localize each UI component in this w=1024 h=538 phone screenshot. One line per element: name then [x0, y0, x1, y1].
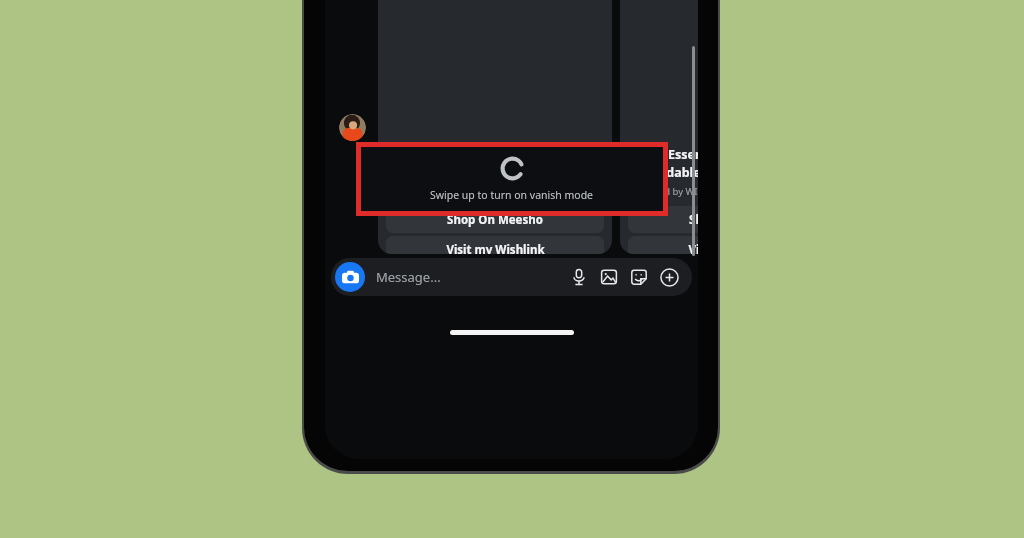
staticText: Swipe up to turn on vanish mode [430, 188, 594, 202]
button[interactable]: More options [654, 262, 684, 292]
staticText: Visit my Wishlink [688, 242, 698, 254]
staticText: Extendable Mop [631, 164, 698, 181]
staticText: HomeEssentials [631, 146, 698, 163]
button[interactable]: Swipe up to turn on vanish mode [356, 142, 668, 216]
button[interactable]: Stickers [624, 262, 654, 292]
button[interactable]: Open camera [335, 262, 365, 292]
staticText: Powered by WISHLINK [631, 185, 698, 198]
button[interactable]: HomeEssentials [620, 0, 698, 254]
staticText: Shop On Meesho [447, 212, 543, 228]
button[interactable]: Visit my Wishlink [386, 236, 604, 254]
staticText: Visit my Wishlink [446, 242, 545, 254]
button[interactable]: Microfiber Feather [378, 0, 612, 254]
button[interactable]: Shop On Meesho [386, 206, 604, 233]
button[interactable]: Profile photo [339, 114, 366, 141]
button[interactable]: Visit my Wishlink [628, 236, 698, 254]
button[interactable]: Photo gallery [594, 262, 624, 292]
staticText: Message... [376, 268, 441, 286]
staticText: Microfiber Feather [389, 146, 506, 163]
staticText: Powered by WISHLINK [389, 185, 490, 198]
button[interactable]: Shop On Meesho [628, 206, 698, 233]
staticText: Shop On Meesho [689, 212, 698, 228]
button[interactable]: Voice message [564, 262, 594, 292]
